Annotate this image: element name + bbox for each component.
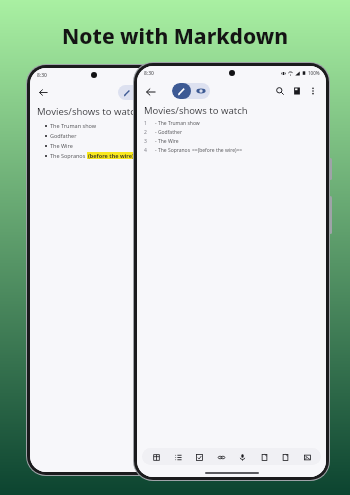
button[interactable]: Edit mode	[118, 85, 135, 100]
staticText: Note with Markdown	[62, 22, 289, 51]
button[interactable]: Bulleted list	[171, 450, 185, 464]
button[interactable]: More options	[306, 84, 320, 98]
staticText: - The Sopranos	[155, 147, 192, 154]
staticText: 3	[144, 138, 147, 145]
staticText: 8:30	[37, 72, 47, 79]
staticText: ==(before the wire)==	[192, 147, 243, 154]
staticText: The Truman show	[50, 122, 97, 129]
staticText: 2	[144, 129, 147, 136]
button[interactable]: Checkbox	[192, 450, 206, 464]
staticText: 8:30	[144, 70, 154, 77]
staticText: (before the wire)	[88, 152, 134, 159]
staticText: 100%	[308, 70, 320, 76]
button[interactable]: Voice note	[235, 450, 249, 464]
button[interactable]: Link	[214, 450, 228, 464]
button[interactable]: Preview mode	[135, 85, 152, 100]
button[interactable]: Back	[36, 85, 50, 99]
staticText: - Godfather	[155, 129, 182, 136]
button[interactable]: Attach file	[257, 450, 271, 464]
staticText: The Wire	[50, 142, 73, 149]
button[interactable]: Edit mode	[172, 83, 191, 99]
button[interactable]: New file	[278, 450, 292, 464]
staticText: Movies/shows to watch	[37, 105, 141, 118]
staticText: The Sopranos	[50, 152, 87, 159]
button[interactable]: Search	[273, 84, 287, 98]
button[interactable]: Table	[149, 450, 163, 464]
button[interactable]: Preview mode	[191, 83, 210, 99]
button[interactable]: Insert image	[300, 450, 314, 464]
staticText: Movies/shows to watch	[144, 104, 248, 117]
staticText: 4	[144, 147, 147, 154]
staticText: Godfather	[50, 132, 77, 139]
staticText: - The Truman show	[155, 120, 200, 127]
button[interactable]: Back	[143, 84, 158, 99]
button[interactable]: Save	[290, 84, 304, 98]
staticText: - The Wire	[155, 138, 179, 145]
staticText: 1	[144, 120, 147, 127]
